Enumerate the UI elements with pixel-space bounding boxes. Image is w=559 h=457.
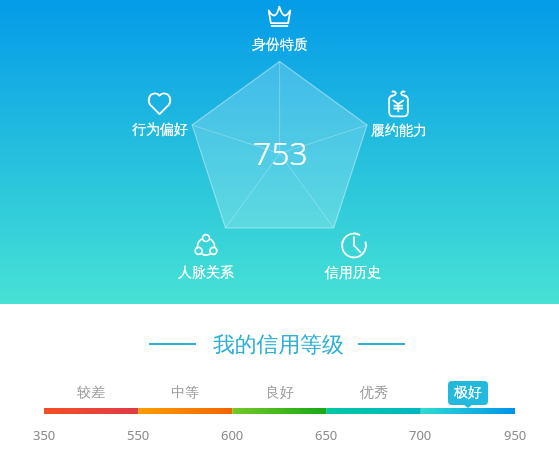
- staticText: 身份特质: [252, 36, 308, 54]
- staticText: 较差: [77, 384, 105, 402]
- staticText: 信用历史: [325, 264, 381, 282]
- button[interactable]: 信用历史: [308, 228, 398, 282]
- staticText: 350: [33, 426, 56, 444]
- staticText: 700: [409, 426, 432, 444]
- staticText: 550: [127, 426, 150, 444]
- staticText: 极好: [454, 384, 482, 402]
- button[interactable]: 人脉关系: [161, 229, 251, 282]
- button[interactable]: 中等: [145, 384, 225, 402]
- staticText: 650: [315, 426, 338, 444]
- staticText: 行为偏好: [132, 121, 188, 139]
- staticText: 753: [253, 131, 308, 175]
- button[interactable]: 良好: [240, 384, 320, 402]
- staticText: 950: [504, 426, 527, 444]
- staticText: 履约能力: [371, 122, 427, 140]
- button[interactable]: 履约能力: [354, 87, 444, 140]
- button[interactable]: 行为偏好: [115, 88, 205, 139]
- staticText: 我的信用等级: [213, 331, 344, 358]
- staticText: 600: [221, 426, 244, 444]
- button[interactable]: 优秀: [334, 384, 414, 402]
- button[interactable]: 极好: [448, 381, 488, 405]
- staticText: 中等: [171, 384, 199, 402]
- staticText: 良好: [266, 384, 294, 402]
- button[interactable]: 较差: [51, 384, 131, 402]
- button[interactable]: 身份特质: [235, 2, 325, 54]
- staticText: 优秀: [360, 384, 388, 402]
- staticText: 人脉关系: [178, 264, 234, 282]
